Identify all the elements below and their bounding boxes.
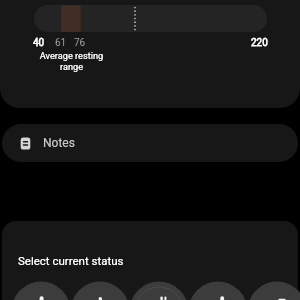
button[interactable]: Status option 4	[189, 282, 247, 300]
staticText: 220	[251, 37, 268, 49]
staticText: Select current status	[18, 254, 124, 267]
button[interactable]: Status option 5	[248, 282, 300, 300]
staticText: Average resting range	[36, 50, 107, 72]
button[interactable]: Status option 2	[71, 282, 129, 300]
button[interactable]: Status option 3	[130, 282, 188, 300]
button[interactable]: Status option 1	[12, 282, 70, 300]
staticText: Notes	[43, 136, 75, 150]
staticText: 61	[55, 37, 67, 49]
button[interactable]: Notes	[2, 124, 298, 162]
staticText: 40	[33, 37, 45, 49]
staticText: 76	[74, 37, 86, 49]
